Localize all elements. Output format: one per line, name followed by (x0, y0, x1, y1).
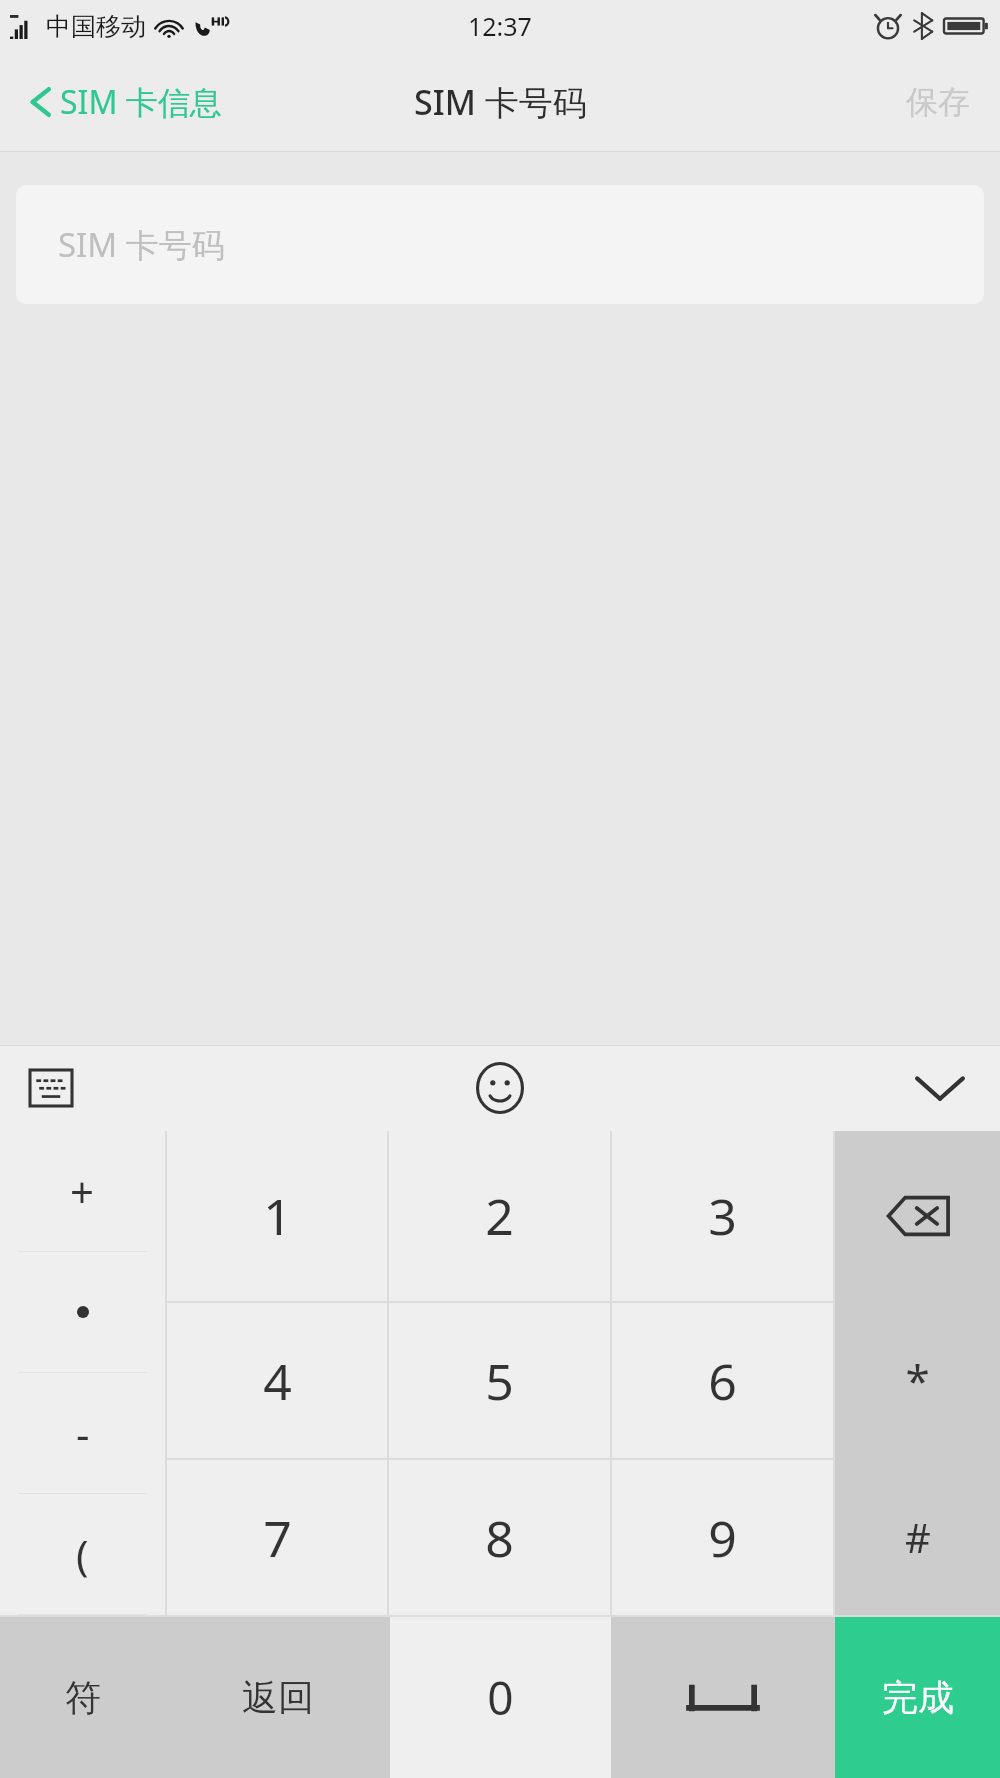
staticText: 12:37 (468, 9, 532, 43)
staticText: 2 (485, 1182, 514, 1250)
button[interactable]: Keyboard layout (18, 1058, 84, 1118)
button[interactable]: + (0, 1131, 165, 1251)
button[interactable]: Hide keyboard (902, 1061, 978, 1115)
staticText: 7 (263, 1504, 292, 1572)
staticText: + (70, 1163, 95, 1220)
button[interactable]: 2 (389, 1131, 610, 1301)
button[interactable]: 1 (167, 1131, 387, 1301)
button[interactable]: 6 (612, 1303, 833, 1458)
button[interactable]: ( (0, 1494, 165, 1614)
button[interactable]: 9 (612, 1460, 833, 1615)
staticText: 返回 (242, 1675, 314, 1720)
button[interactable]: * (835, 1301, 1000, 1458)
staticText: 0 (487, 1666, 514, 1729)
staticText: 1 (263, 1182, 292, 1250)
button[interactable]: SIM 卡信息 (0, 70, 238, 134)
button[interactable]: 符 (0, 1617, 165, 1778)
staticText: 8 (485, 1504, 514, 1572)
staticText: 5 (485, 1347, 514, 1415)
button[interactable] (0, 1252, 165, 1372)
staticText: SIM 卡号码 (414, 79, 587, 125)
staticText: 4 (263, 1347, 292, 1415)
button[interactable]: 5 (389, 1303, 610, 1458)
button[interactable]: 8 (389, 1460, 610, 1615)
staticText: SIM 卡信息 (60, 80, 222, 124)
button[interactable]: 4 (167, 1303, 387, 1458)
staticText: * (905, 1350, 930, 1410)
staticText: 符 (65, 1675, 101, 1720)
staticText: # (905, 1510, 931, 1564)
button[interactable]: 完成 (835, 1617, 1000, 1778)
button[interactable]: # (835, 1458, 1000, 1615)
staticText: 3 (708, 1182, 737, 1250)
button[interactable]: 保存 (876, 66, 1000, 138)
button[interactable]: 返回 (165, 1617, 390, 1778)
staticText: 6 (708, 1347, 737, 1415)
button[interactable]: 7 (167, 1460, 387, 1615)
staticText: 9 (708, 1504, 737, 1572)
button[interactable]: 0 (390, 1617, 611, 1778)
button[interactable]: Space (611, 1617, 835, 1778)
staticText: SIM 卡号码 (58, 222, 225, 267)
staticText: 保存 (906, 82, 970, 122)
staticText: 中国移动 (46, 11, 146, 42)
staticText: ( (76, 1526, 89, 1583)
staticText: 完成 (882, 1675, 954, 1720)
button[interactable]: Delete (835, 1131, 1000, 1301)
staticText: - (76, 1405, 90, 1462)
button[interactable]: 3 (612, 1131, 833, 1301)
button[interactable]: Emoji (464, 1050, 536, 1126)
button[interactable]: SIM 卡号码 (16, 185, 984, 304)
button[interactable]: - (0, 1373, 165, 1493)
